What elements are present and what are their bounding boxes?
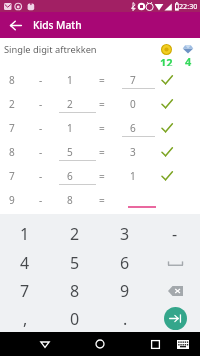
staticText: Kids Math [33,18,82,32]
staticText: = [99,193,105,207]
staticText: - [39,121,43,135]
button[interactable]: 4 [0,248,50,277]
staticText: - [39,145,43,159]
button[interactable]: 7 [0,277,50,305]
staticText: 4 [20,252,30,274]
staticText: 6 [67,169,73,183]
button[interactable]: , [0,305,50,332]
staticText: 12 [160,55,173,66]
staticText: 5 [67,145,73,159]
staticText: = [99,169,105,183]
staticText: 6 [130,121,136,135]
staticText: , [23,308,28,330]
button[interactable]: 8 [0,140,200,164]
button[interactable]: 8 [50,277,100,305]
button[interactable]: Backspace [150,277,200,305]
button[interactable]: 9 [100,277,150,305]
staticText: 1 [130,169,136,183]
button[interactable]: Minus [150,219,200,248]
button[interactable]: 1 [0,219,50,248]
staticText: 4 [185,54,192,66]
staticText: . [123,308,128,330]
button[interactable]: 5 [50,248,100,277]
staticText: 7 [20,280,30,302]
button[interactable]: Space [150,248,200,277]
button[interactable]: 6 [100,248,150,277]
staticText: 1 [67,73,73,87]
button[interactable]: 8 [0,68,200,92]
button[interactable]: Back [5,15,25,35]
button[interactable]: 3 [100,219,150,248]
staticText: = [99,145,105,159]
staticText: 1 [20,223,30,245]
staticText: 5 [70,252,80,274]
staticText: - [39,73,43,87]
staticText: 0 [130,97,136,111]
staticText: - [172,223,178,245]
button[interactable]: Home [92,336,108,352]
button[interactable]: . [100,305,150,332]
staticText: 8 [70,280,80,302]
staticText: - [39,97,43,111]
staticText: 8 [67,193,73,207]
staticText: 9 [9,193,15,207]
staticText: 1 [67,121,73,135]
staticText: 22:30 [179,1,198,11]
button[interactable]: Back [37,336,53,352]
staticText: 7 [9,169,15,183]
staticText: 2 [67,97,73,111]
button[interactable]: 2 [50,219,100,248]
button[interactable]: Enter [150,305,200,332]
staticText: 8 [9,145,15,159]
staticText: = [99,121,105,135]
staticText: Single digit aftrekken [4,43,97,56]
staticText: = [99,73,105,87]
staticText: - [39,169,43,183]
staticText: 2 [70,223,80,245]
staticText: 2 [9,97,15,111]
button[interactable]: Enter [164,307,187,330]
staticText: 9 [120,280,130,302]
staticText: 7 [9,121,15,135]
button[interactable]: 2 [0,92,200,116]
staticText: - [39,193,43,207]
button[interactable]: 9 [0,188,200,212]
button[interactable]: 7 [0,164,200,188]
staticText: 8 [9,73,15,87]
staticText: 0 [70,308,80,330]
staticText: 3 [130,145,136,159]
staticText: 3 [120,223,130,245]
staticText: 6 [120,252,130,274]
button[interactable]: Keyboard [175,336,191,352]
staticText: = [99,97,105,111]
button[interactable]: 0 [50,305,100,332]
staticText: 7 [130,73,136,87]
button[interactable]: Recents [147,336,163,352]
button[interactable]: 7 [0,116,200,140]
